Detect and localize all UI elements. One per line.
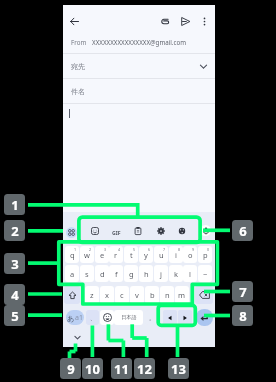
staticText: a	[70, 269, 75, 279]
button[interactable]: 。	[145, 310, 158, 325]
button[interactable]: f	[109, 265, 123, 282]
button[interactable]: v	[130, 286, 144, 304]
button[interactable]: k	[169, 265, 183, 282]
staticText: 宛先	[71, 62, 85, 71]
staticText: あ	[67, 314, 75, 323]
button[interactable]: x	[100, 286, 114, 304]
staticText: y	[144, 250, 148, 260]
button[interactable]: GIF	[109, 227, 123, 238]
staticText: o	[188, 250, 193, 260]
button[interactable]: 宛先	[63, 54, 215, 79]
button[interactable]: Attach file	[156, 11, 175, 32]
button[interactable]: Hide keyboard	[72, 332, 83, 342]
button[interactable]: More options	[195, 11, 214, 32]
staticText: d	[100, 269, 105, 279]
staticText: 日本語	[121, 314, 137, 321]
staticText: j	[160, 269, 162, 279]
staticText: q	[70, 250, 75, 260]
button[interactable]: Gboard menu	[66, 227, 77, 238]
staticText: b	[150, 290, 155, 300]
button[interactable]: s	[80, 265, 94, 282]
button[interactable]: Clipboard	[132, 225, 144, 237]
staticText: v	[135, 290, 139, 300]
staticText: f	[115, 269, 118, 279]
staticText: c	[120, 290, 124, 300]
button[interactable]: −	[198, 265, 212, 282]
staticText: s	[85, 269, 89, 279]
staticText: 6	[239, 222, 247, 240]
staticText: 。	[149, 314, 155, 322]
staticText: p	[203, 250, 208, 260]
staticText: XXXXXXXXXXXXXXXX@gmail.com	[92, 38, 186, 46]
button[interactable]: n	[160, 286, 174, 304]
button[interactable]: g	[124, 265, 138, 282]
staticText: GIF	[112, 229, 121, 236]
staticText: n	[165, 290, 170, 300]
button[interactable]: h	[139, 265, 153, 282]
button[interactable]: o	[183, 246, 197, 263]
button[interactable]: w	[80, 246, 94, 263]
staticText: 7	[163, 247, 166, 252]
button[interactable]	[178, 310, 192, 325]
staticText: 4	[11, 286, 19, 304]
button[interactable]: 件名	[63, 79, 215, 103]
button[interactable]: l	[183, 265, 197, 282]
button[interactable]: q	[65, 246, 79, 263]
button[interactable]	[64, 286, 80, 304]
staticText: x	[105, 290, 109, 300]
button[interactable]: Themes	[176, 225, 188, 237]
staticText: 13	[171, 360, 186, 378]
button[interactable]: Settings	[155, 225, 167, 237]
staticText: h	[144, 269, 149, 279]
button[interactable]: Stickers	[89, 225, 101, 237]
staticText: 9	[67, 360, 75, 378]
button[interactable]: r	[109, 246, 123, 263]
staticText: 5	[11, 307, 19, 325]
button[interactable]: From	[63, 29, 215, 54]
button[interactable]: 日本語	[114, 310, 143, 325]
staticText: 4	[118, 247, 121, 252]
staticText: 件名	[71, 87, 85, 96]
staticText: i	[175, 250, 177, 260]
button[interactable]: 、	[86, 310, 99, 325]
button[interactable]: i	[169, 246, 183, 263]
staticText: g	[129, 269, 134, 279]
button[interactable]: Voice input	[200, 225, 211, 236]
button[interactable]: j	[154, 265, 168, 282]
button[interactable]: m	[175, 286, 189, 304]
staticText: 10	[85, 360, 100, 378]
staticText: 、	[90, 314, 96, 322]
button[interactable]: p	[198, 246, 212, 263]
staticText: r	[114, 250, 118, 260]
button[interactable]: a	[65, 265, 79, 282]
button[interactable]: あ	[64, 310, 86, 325]
staticText: u	[159, 250, 164, 260]
staticText: From	[71, 38, 87, 46]
button[interactable]: d	[95, 265, 109, 282]
button[interactable]: e	[95, 246, 109, 263]
staticText: 8	[178, 247, 181, 252]
button[interactable]: y	[139, 246, 153, 263]
staticText: 2	[11, 222, 19, 240]
button[interactable]: u	[154, 246, 168, 263]
button[interactable]	[195, 286, 213, 304]
button[interactable]: Send	[176, 11, 195, 32]
button[interactable]: b	[145, 286, 159, 304]
button[interactable]	[100, 310, 114, 325]
staticText: 7	[239, 283, 247, 301]
button[interactable]: Enter	[196, 309, 213, 326]
staticText: 8	[239, 307, 247, 325]
button[interactable]: c	[115, 286, 129, 304]
staticText: 1	[11, 196, 19, 214]
staticText: 0	[207, 247, 210, 252]
staticText: a1	[75, 313, 83, 323]
staticText: m	[178, 290, 186, 300]
staticText: 5	[133, 247, 136, 252]
button[interactable]: t	[124, 246, 138, 263]
button[interactable]: z	[85, 286, 99, 304]
button[interactable]: Back	[64, 11, 84, 32]
staticText: 9	[192, 247, 195, 252]
staticText: 11	[114, 360, 129, 378]
button[interactable]	[163, 310, 177, 325]
staticText: 12	[137, 360, 152, 378]
